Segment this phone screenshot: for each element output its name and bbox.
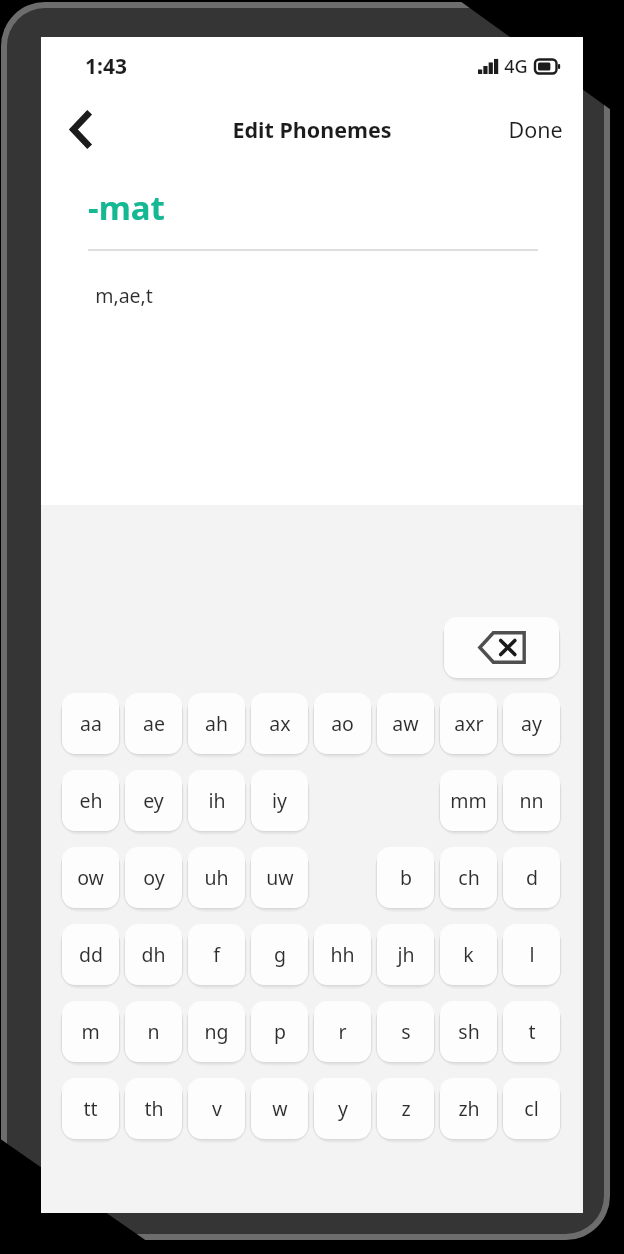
button[interactable]: ih (188, 770, 245, 831)
staticText: tt (83, 1095, 98, 1122)
staticText: axr (454, 710, 484, 737)
staticText: oy (143, 864, 165, 891)
button[interactable]: w (251, 1078, 308, 1139)
button[interactable]: m (62, 1001, 119, 1062)
button[interactable]: ch (440, 847, 497, 908)
button[interactable]: p (251, 1001, 308, 1062)
staticText: ah (205, 710, 228, 737)
button[interactable]: m,ae,t (91, 278, 157, 313)
button[interactable]: d (503, 847, 560, 908)
staticText: ao (331, 710, 354, 737)
button[interactable]: mm (440, 770, 497, 831)
staticText: th (144, 1095, 164, 1122)
staticText: 1:43 (85, 52, 127, 81)
staticText: uh (204, 864, 229, 891)
staticText: ih (208, 787, 226, 814)
staticText: m (81, 1018, 100, 1045)
button[interactable]: b (377, 847, 434, 908)
button[interactable]: hh (314, 924, 371, 985)
button[interactable]: aa (62, 693, 119, 754)
staticText: iy (272, 787, 287, 814)
staticText: ax (269, 710, 291, 737)
staticText: cl (524, 1095, 539, 1122)
button[interactable]: z (377, 1078, 434, 1139)
button[interactable]: th (125, 1078, 182, 1139)
button[interactable]: eh (62, 770, 119, 831)
staticText: ch (458, 864, 480, 891)
staticText: l (529, 941, 535, 968)
button[interactable]: dd (62, 924, 119, 985)
button[interactable]: g (251, 924, 308, 985)
button[interactable]: l (503, 924, 560, 985)
staticText: z (401, 1095, 411, 1122)
button[interactable]: uw (251, 847, 308, 908)
staticText: 4G (504, 54, 528, 79)
staticText: g (274, 941, 286, 968)
staticText: r (338, 1018, 347, 1045)
staticText: dh (141, 941, 166, 968)
button[interactable]: Done (488, 103, 583, 156)
staticText: k (463, 941, 474, 968)
staticText: sh (458, 1018, 480, 1045)
staticText: n (147, 1018, 160, 1045)
staticText: mm (450, 787, 487, 814)
button[interactable]: r (314, 1001, 371, 1062)
staticText: dd (79, 941, 103, 968)
button[interactable]: t (503, 1001, 560, 1062)
staticText: v (212, 1095, 222, 1122)
button[interactable]: k (440, 924, 497, 985)
button[interactable]: n (125, 1001, 182, 1062)
staticText: zh (458, 1095, 480, 1122)
button[interactable]: aw (377, 693, 434, 754)
staticText: hh (330, 941, 355, 968)
button[interactable]: zh (440, 1078, 497, 1139)
button[interactable]: iy (251, 770, 308, 831)
staticText: eh (79, 787, 103, 814)
button[interactable]: uh (188, 847, 245, 908)
button[interactable]: ay (503, 693, 560, 754)
staticText: aa (80, 710, 102, 737)
staticText: d (526, 864, 538, 891)
staticText: y (338, 1095, 348, 1122)
staticText: ae (143, 710, 165, 737)
staticText: b (400, 864, 412, 891)
button[interactable]: v (188, 1078, 245, 1139)
button[interactable]: ae (125, 693, 182, 754)
button[interactable]: ax (251, 693, 308, 754)
button[interactable]: jh (377, 924, 434, 985)
staticText: ay (521, 710, 542, 737)
staticText: s (401, 1018, 411, 1045)
staticText: aw (392, 710, 419, 737)
staticText: w (272, 1095, 288, 1122)
staticText: Edit Phonemes (232, 115, 392, 144)
staticText: nn (519, 787, 544, 814)
button[interactable]: y (314, 1078, 371, 1139)
staticText: ng (204, 1018, 229, 1045)
staticText: jh (397, 941, 415, 968)
button[interactable]: dh (125, 924, 182, 985)
staticText: -mat (88, 185, 165, 230)
staticText: Done (508, 115, 563, 144)
staticText: ow (77, 864, 104, 891)
staticText: ey (143, 787, 164, 814)
button[interactable]: ah (188, 693, 245, 754)
button[interactable]: Backspace (444, 617, 559, 678)
button[interactable]: Back (53, 102, 107, 156)
staticText: p (274, 1018, 286, 1045)
button[interactable]: f (188, 924, 245, 985)
button[interactable]: cl (503, 1078, 560, 1139)
button[interactable]: tt (62, 1078, 119, 1139)
staticText: t (528, 1018, 536, 1045)
button[interactable]: sh (440, 1001, 497, 1062)
button[interactable]: ey (125, 770, 182, 831)
staticText: m,ae,t (95, 282, 153, 309)
button[interactable]: ng (188, 1001, 245, 1062)
button[interactable]: ao (314, 693, 371, 754)
button[interactable]: s (377, 1001, 434, 1062)
button[interactable]: axr (440, 693, 497, 754)
staticText: uw (266, 864, 294, 891)
button[interactable]: ow (62, 847, 119, 908)
staticText: f (213, 941, 220, 968)
button[interactable]: oy (125, 847, 182, 908)
button[interactable]: nn (503, 770, 560, 831)
